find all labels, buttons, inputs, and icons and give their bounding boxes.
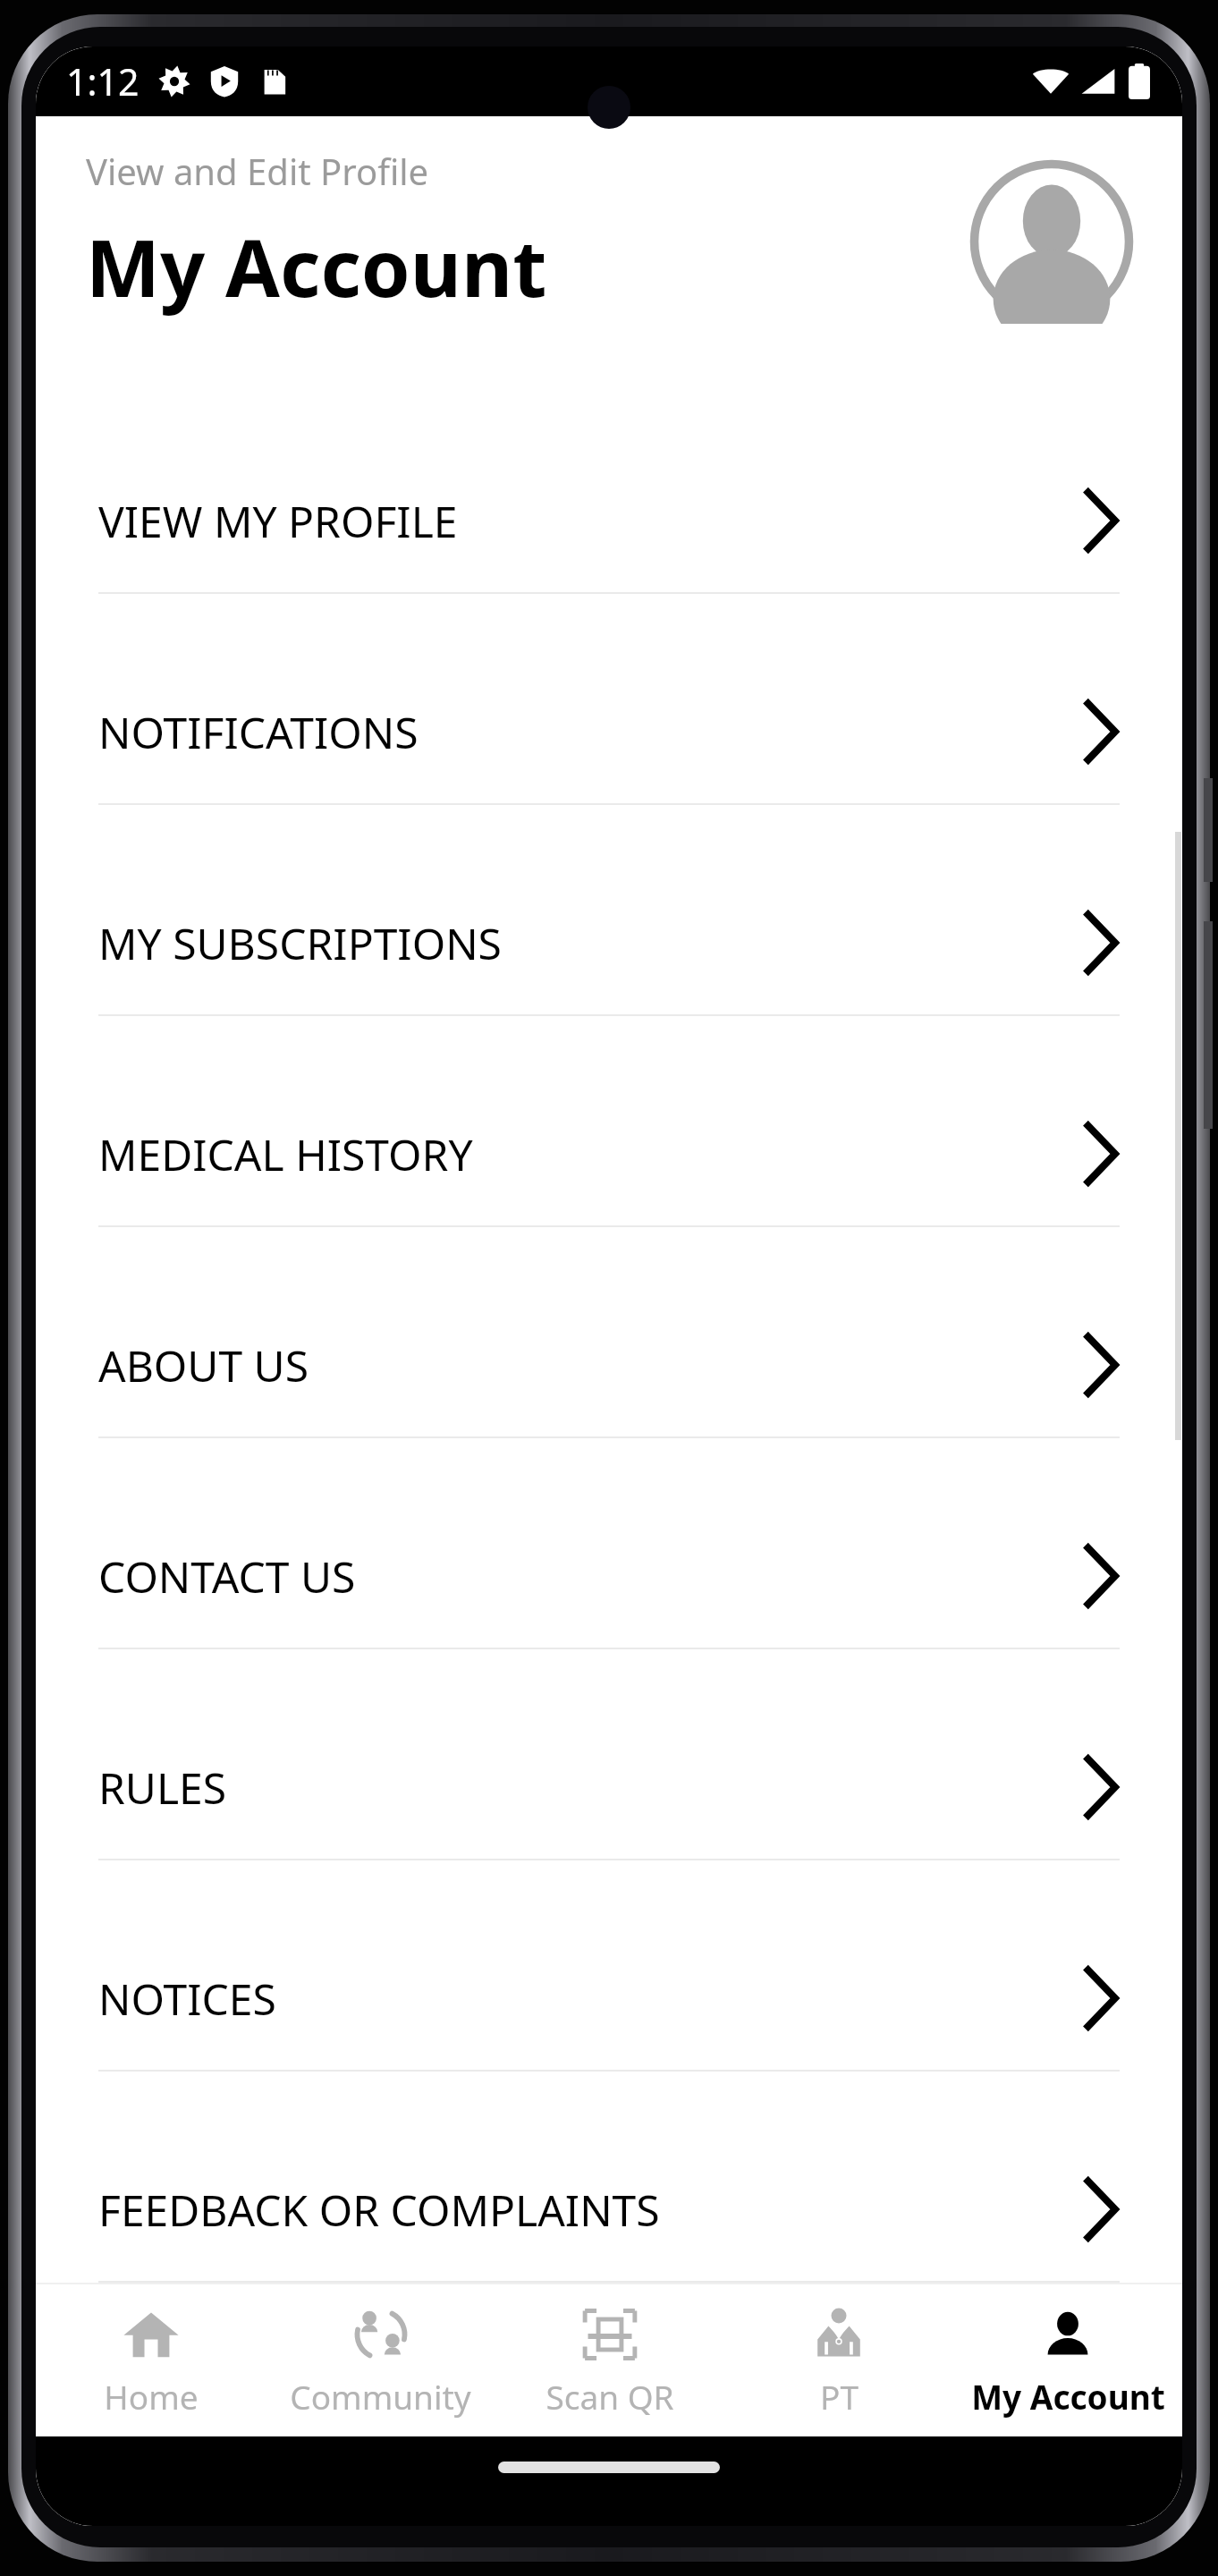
button[interactable]: MEDICAL HISTORY xyxy=(36,1082,1182,1225)
staticText: Community xyxy=(290,2374,471,2419)
staticText: MY SUBSCRIPTIONS xyxy=(98,914,502,972)
button[interactable]: Home xyxy=(36,2284,266,2436)
button[interactable]: NOTIFICATIONS xyxy=(36,660,1182,803)
staticText: 1:12 xyxy=(66,56,140,106)
button[interactable]: Community xyxy=(266,2284,495,2436)
staticText: View and Edit Profile xyxy=(86,147,429,195)
staticText: My Account xyxy=(86,213,547,320)
staticText: Home xyxy=(104,2374,199,2419)
staticText: MEDICAL HISTORY xyxy=(98,1125,473,1183)
button[interactable]: NOTICES xyxy=(36,1927,1182,2070)
button[interactable]: ABOUT US xyxy=(36,1293,1182,1436)
button[interactable]: Profile photo xyxy=(969,159,1134,324)
button[interactable]: MY SUBSCRIPTIONS xyxy=(36,871,1182,1014)
button[interactable]: Scan QR xyxy=(495,2284,724,2436)
staticText: RULES xyxy=(98,1758,227,1817)
staticText: PT xyxy=(820,2374,859,2419)
staticText: CONTACT US xyxy=(98,1547,356,1606)
button[interactable]: My Account xyxy=(953,2284,1182,2436)
staticText: NOTICES xyxy=(98,1970,276,2028)
staticText: FEEDBACK OR COMPLAINTS xyxy=(98,2181,660,2239)
staticText: Scan QR xyxy=(546,2374,674,2419)
button[interactable]: RULES xyxy=(36,1716,1182,1859)
button[interactable]: PT xyxy=(724,2284,953,2436)
staticText: My Account xyxy=(971,2374,1165,2419)
button[interactable]: CONTACT US xyxy=(36,1504,1182,1648)
staticText: NOTIFICATIONS xyxy=(98,703,419,761)
button[interactable]: FEEDBACK OR COMPLAINTS xyxy=(36,2138,1182,2281)
staticText: ABOUT US xyxy=(98,1336,309,1394)
button[interactable]: VIEW MY PROFILE xyxy=(36,449,1182,592)
staticText: VIEW MY PROFILE xyxy=(98,492,458,550)
